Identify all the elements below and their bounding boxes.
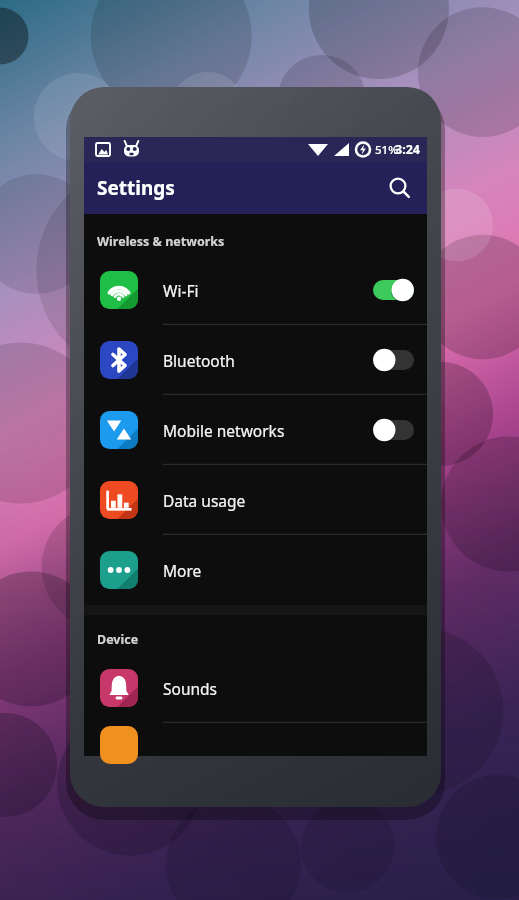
staticText: Wi-Fi: [163, 280, 199, 301]
staticText: Bluetooth: [163, 350, 235, 371]
staticText: Settings: [97, 175, 175, 201]
staticText: 3:24: [395, 141, 420, 158]
button[interactable]: Wi-Fi toggle: [367, 274, 415, 306]
staticText: Device: [97, 631, 139, 648]
button[interactable]: Bluetooth toggle: [367, 344, 415, 376]
staticText: 51%: [375, 142, 398, 158]
button[interactable]: Bluetooth: [84, 325, 427, 395]
staticText: Sounds: [163, 678, 218, 699]
staticText: Data usage: [163, 490, 246, 511]
button[interactable]: Wi-Fi: [84, 255, 427, 325]
button[interactable]: Search: [380, 169, 418, 207]
button[interactable]: Mobile networks toggle: [367, 414, 415, 446]
button[interactable]: Mobile networks: [84, 395, 427, 465]
button[interactable]: Sounds: [84, 653, 427, 723]
staticText: More: [163, 560, 202, 581]
staticText: Mobile networks: [163, 420, 285, 441]
button[interactable]: More: [84, 535, 427, 605]
button[interactable]: Data usage: [84, 465, 427, 535]
staticText: Wireless & networks: [97, 233, 225, 250]
